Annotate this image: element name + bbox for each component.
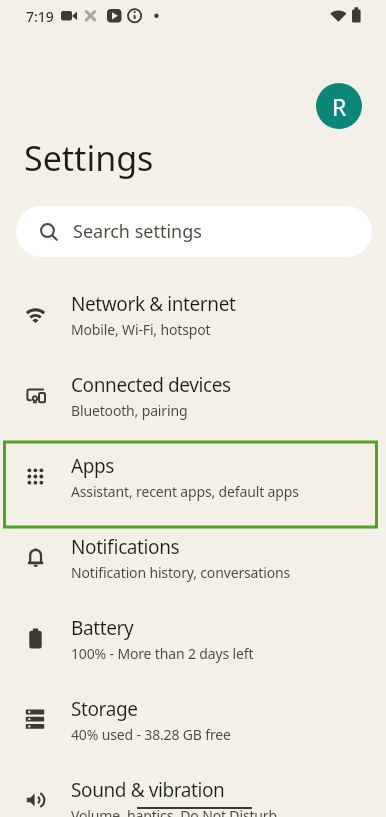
staticText: Bluetooth, pairing <box>71 401 188 420</box>
staticText: Sound & vibration <box>71 777 225 803</box>
button[interactable]: R <box>316 83 362 129</box>
button[interactable]: Battery <box>0 598 386 679</box>
button[interactable]: Network & internet <box>0 274 386 355</box>
staticText: Assistant, recent apps, default apps <box>71 482 299 501</box>
staticText: Notification history, conversations <box>71 563 291 582</box>
button[interactable]: Notifications <box>0 517 386 598</box>
staticText: Search settings <box>73 219 202 244</box>
staticText: Network & internet <box>71 291 236 317</box>
button[interactable]: Search settings <box>16 206 372 257</box>
staticText: 100% - More than 2 days left <box>71 644 254 663</box>
staticText: 40% used - 38.28 GB free <box>71 725 231 744</box>
button[interactable]: Sound & vibration <box>0 760 386 817</box>
button[interactable]: Connected devices <box>0 355 386 436</box>
staticText: Storage <box>71 696 138 722</box>
staticText: Battery <box>71 615 134 641</box>
staticText: R <box>332 91 347 122</box>
staticText: Settings <box>24 135 154 181</box>
staticText: Apps <box>71 453 115 479</box>
staticText: Connected devices <box>71 372 231 398</box>
staticText: Notifications <box>71 534 180 560</box>
button[interactable]: Apps <box>0 436 386 517</box>
button[interactable]: Storage <box>0 679 386 760</box>
staticText: Mobile, Wi-Fi, hotspot <box>71 320 211 339</box>
staticText: Volume, haptics, Do Not Disturb <box>71 806 277 817</box>
staticText: 7:19 <box>26 7 54 26</box>
